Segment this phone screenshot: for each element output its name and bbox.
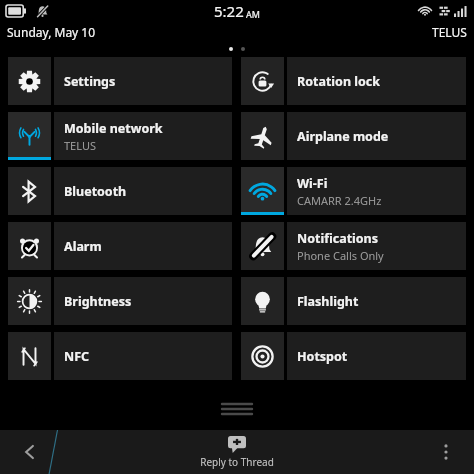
button[interactable]: NFC xyxy=(8,332,232,380)
staticText: 5:22 xyxy=(214,1,244,21)
staticText: TELUS xyxy=(64,138,96,153)
staticText: Wi-Fi xyxy=(297,175,328,192)
button[interactable]: Flashlight xyxy=(241,277,466,325)
button[interactable]: Hotspot xyxy=(241,332,466,380)
staticText: Flashlight xyxy=(297,293,359,310)
button[interactable]: Mobile network xyxy=(8,112,232,160)
button[interactable]: Brightness xyxy=(8,277,232,325)
staticText: Sunday, May 10 xyxy=(7,24,96,40)
button[interactable]: Airplane mode xyxy=(241,112,466,160)
staticText: Settings xyxy=(64,73,116,90)
staticText: NFC xyxy=(64,348,90,365)
button[interactable]: Wi-Fi xyxy=(241,167,466,215)
button[interactable]: Back xyxy=(8,430,52,474)
staticText: Airplane mode xyxy=(297,128,389,145)
staticText: Brightness xyxy=(64,293,132,310)
button[interactable]: Notifications xyxy=(241,222,466,270)
button[interactable]: Alarm xyxy=(8,222,232,270)
staticText: Hotspot xyxy=(297,348,348,365)
button[interactable]: More options xyxy=(426,432,466,472)
button[interactable]: Bluetooth xyxy=(8,167,232,215)
staticText: Bluetooth xyxy=(64,183,127,200)
staticText: Phone Calls Only xyxy=(297,248,384,263)
staticText: Alarm xyxy=(64,238,102,255)
staticText: Mobile network xyxy=(64,120,163,137)
button[interactable]: Rotation lock xyxy=(241,57,466,105)
staticText: Reply to Thread xyxy=(200,455,274,469)
staticText: TELUS xyxy=(432,24,467,40)
staticText: Rotation lock xyxy=(297,73,381,90)
button[interactable]: Reply to Thread xyxy=(188,433,286,472)
staticText: AM xyxy=(246,8,260,20)
button[interactable]: Settings xyxy=(8,57,232,105)
staticText: Notifications xyxy=(297,230,379,247)
staticText: CAMARR 2.4GHz xyxy=(297,193,382,208)
